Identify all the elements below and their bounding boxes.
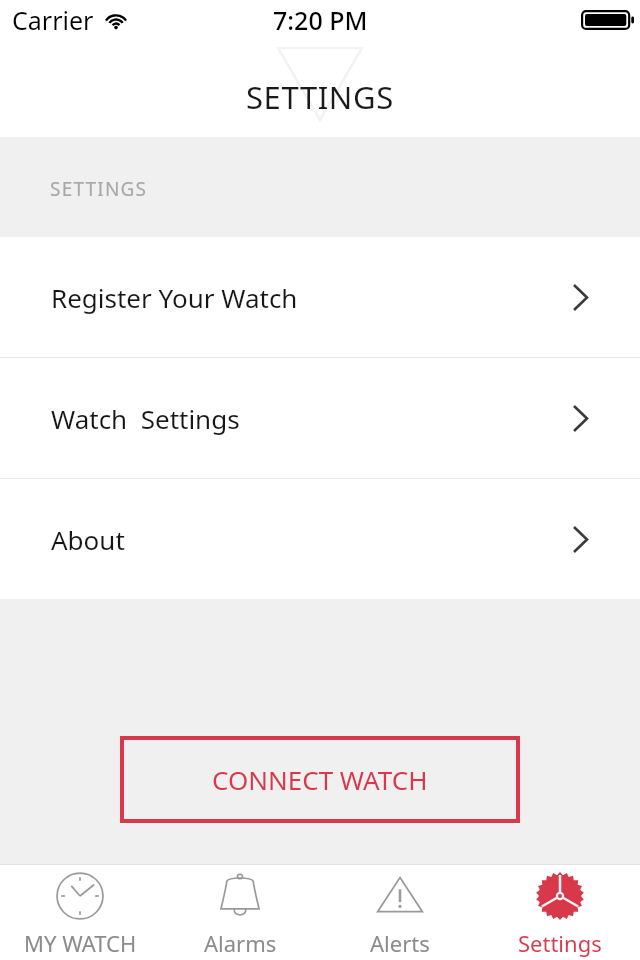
staticText: Carrier [12,3,94,37]
staticText: About [51,522,125,557]
button[interactable]: About [0,479,640,599]
staticText: Alerts [370,928,430,958]
button[interactable]: My Watch [0,865,160,960]
staticText: Register Your Watch [51,280,298,315]
staticText: SETTINGS [50,176,148,202]
button[interactable]: Register Your Watch [0,237,640,357]
staticText: 7:20 PM [273,3,368,37]
staticText: Watch Settings [51,401,240,436]
button[interactable]: Alarms [160,865,320,960]
button[interactable]: CONNECT WATCH [120,736,520,823]
button[interactable]: Alerts [320,865,480,960]
staticText: MY WATCH [24,928,137,958]
button[interactable]: Settings [480,865,640,960]
staticText: Settings [518,928,602,958]
button[interactable]: Watch Settings [0,358,640,478]
staticText: Alarms [204,928,277,958]
staticText: SETTINGS [246,76,394,118]
staticText: CONNECT WATCH [212,762,428,797]
